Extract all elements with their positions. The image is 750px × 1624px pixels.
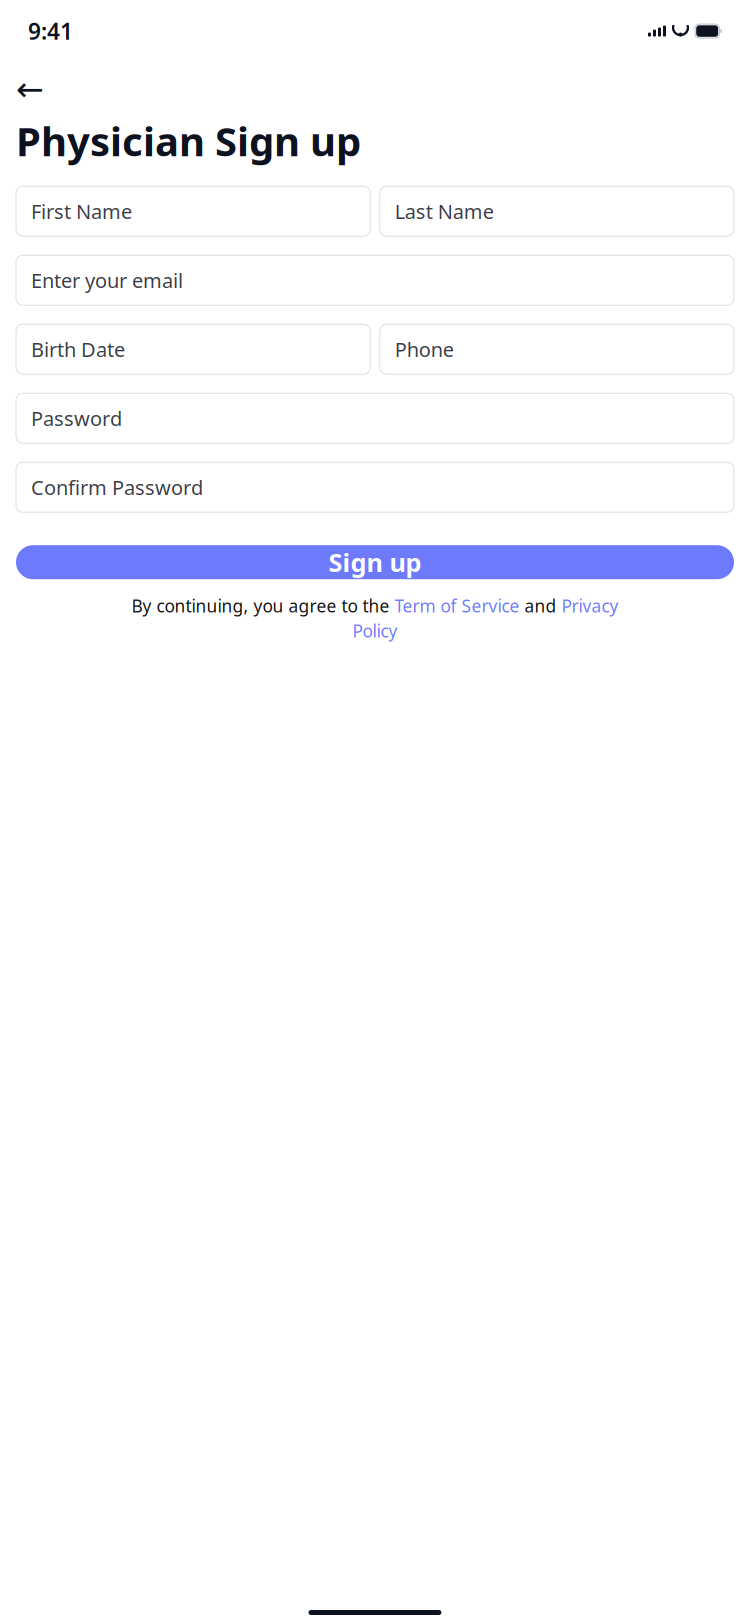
- button[interactable]: Policy: [352, 619, 397, 642]
- staticText: First Name: [31, 198, 132, 224]
- staticText: ←: [16, 70, 44, 108]
- staticText: Term of Service: [394, 594, 519, 617]
- button[interactable]: Back: [16, 72, 60, 106]
- staticText: 9:41: [28, 16, 73, 46]
- staticText: Last Name: [395, 198, 494, 224]
- button[interactable]: Privacy: [561, 594, 618, 617]
- staticText: Physician Sign up: [16, 114, 361, 167]
- staticText: Enter your email: [31, 267, 183, 293]
- staticText: Policy: [352, 619, 397, 642]
- staticText: Birth Date: [31, 336, 125, 362]
- button[interactable]: Term of Service: [394, 594, 519, 617]
- staticText: Sign up: [328, 545, 421, 579]
- button[interactable]: Sign up: [16, 545, 734, 579]
- staticText: Password: [31, 405, 122, 431]
- staticText: and: [519, 594, 561, 617]
- staticText: Confirm Password: [31, 474, 203, 500]
- staticText: By continuing, you agree to the: [131, 594, 394, 617]
- staticText: Privacy: [561, 594, 618, 617]
- staticText: Phone: [395, 336, 454, 362]
